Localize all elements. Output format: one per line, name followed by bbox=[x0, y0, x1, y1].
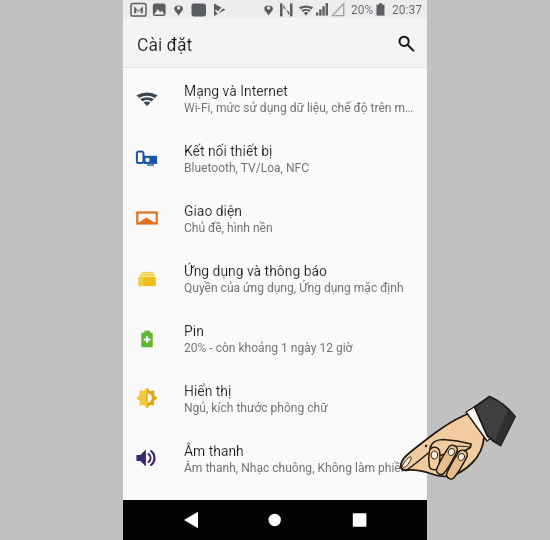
button[interactable]: Kết nối thiết bị bbox=[123, 128, 427, 188]
staticText: Wi-Fi, mức sử dụng dữ liệu, chế độ trên … bbox=[184, 101, 416, 115]
staticText: Hiển thị bbox=[184, 383, 232, 399]
staticText: 20:37 bbox=[392, 3, 422, 17]
button[interactable]: Recent apps bbox=[345, 505, 375, 535]
staticText: Bluetooth, TV/Loa, NFC bbox=[184, 161, 416, 175]
staticText: Pin bbox=[184, 323, 204, 339]
staticText: Âm thanh bbox=[184, 443, 244, 459]
button[interactable]: Hiển thị bbox=[123, 368, 427, 428]
button[interactable]: Back bbox=[176, 505, 206, 535]
button[interactable]: Mạng và Internet bbox=[123, 68, 427, 128]
staticText: Ngủ, kích thước phông chữ bbox=[184, 401, 416, 415]
staticText: Ứng dụng và thông báo bbox=[184, 263, 327, 279]
staticText: Kết nối thiết bị bbox=[184, 143, 273, 159]
button[interactable]: Ứng dụng và thông báo bbox=[123, 248, 427, 308]
button[interactable]: Pin bbox=[123, 308, 427, 368]
staticText: Quyền của ứng dụng, Ứng dụng mặc định bbox=[184, 281, 416, 295]
staticText: Cài đặt bbox=[137, 35, 193, 56]
button[interactable]: Âm thanh bbox=[123, 428, 427, 488]
button[interactable]: Home bbox=[260, 505, 290, 535]
staticText: 20% bbox=[351, 3, 374, 17]
staticText: Chủ đề, hình nền bbox=[184, 221, 416, 235]
button[interactable]: Giao diện bbox=[123, 188, 427, 248]
staticText: 20% - còn khoảng 1 ngày 12 giờ bbox=[184, 341, 416, 355]
button[interactable]: Search bbox=[387, 27, 423, 63]
staticText: Mạng và Internet bbox=[184, 83, 288, 99]
staticText: Âm thanh, Nhạc chuông, Không làm phiền bbox=[184, 461, 416, 475]
staticText: Giao diện bbox=[184, 203, 243, 219]
